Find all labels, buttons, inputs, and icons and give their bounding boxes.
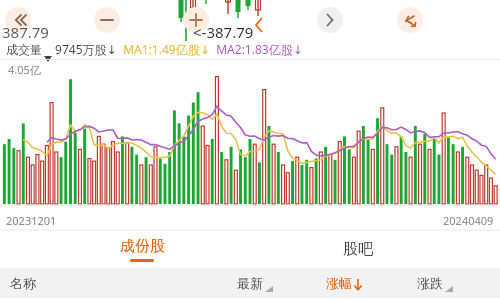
button[interactable]: Next [317, 7, 343, 33]
staticText: 最新 [237, 275, 263, 291]
staticText: 387.79 [2, 22, 49, 42]
staticText: 涨幅 [326, 275, 352, 291]
staticText: 4.05亿 [8, 62, 41, 77]
staticText: 成份股 [120, 237, 165, 256]
button[interactable]: 涨跌 [390, 268, 480, 298]
button[interactable]: 股吧 [283, 230, 433, 268]
button[interactable]: 涨幅 [300, 268, 390, 298]
staticText: 股吧 [343, 240, 373, 259]
button[interactable]: Fast rewind [5, 7, 31, 33]
button[interactable]: Zoom out [94, 7, 120, 33]
staticText: MA2:1.83亿股↓ [210, 41, 303, 57]
staticText: 成交量 [6, 42, 42, 57]
staticText: 20231201 [6, 213, 57, 228]
staticText: <-387.79 [193, 22, 254, 42]
button[interactable]: Fullscreen [397, 7, 423, 33]
staticText: 20240409 [443, 213, 494, 228]
button[interactable]: 最新 [210, 268, 300, 298]
staticText: 9745万股↓ [52, 41, 117, 57]
button[interactable]: Zoom in [183, 7, 209, 33]
staticText: MA1:1.49亿股↓ [117, 41, 210, 57]
staticText: 涨跌 [417, 275, 443, 291]
button[interactable]: 成份股 [67, 230, 217, 268]
staticText: 名称 [10, 275, 210, 291]
button[interactable]: 成交量 [6, 42, 52, 57]
